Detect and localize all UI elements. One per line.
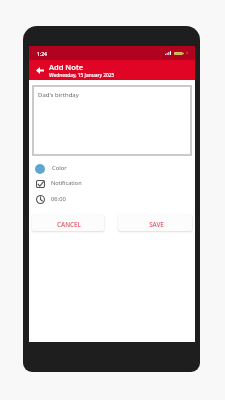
staticText: 06:00 [51,195,66,203]
staticText: Color [52,164,67,172]
button[interactable]: Color [29,161,195,176]
button[interactable]: Dad's birthday [32,85,192,156]
staticText: Dad's birthday [38,91,79,99]
staticText: Add Note [49,62,84,72]
staticText: SAVE [149,220,164,229]
button[interactable]: Notification [29,176,195,191]
button[interactable]: SAVE [118,215,192,231]
staticText: Notification [51,179,82,187]
button[interactable]: 06:00 [29,192,195,207]
staticText: CANCEL [57,220,81,229]
staticText: 1:24 [37,51,47,58]
button[interactable]: Back [31,61,49,79]
staticText: Wednesday, 15 January 2025 [49,72,115,79]
button[interactable]: CANCEL [32,215,104,231]
